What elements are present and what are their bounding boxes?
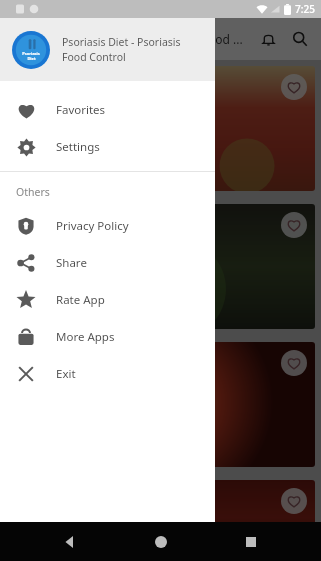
staticText: Settings [56,139,100,155]
button[interactable]: Favorite [281,488,307,514]
staticText: Others [16,185,50,199]
button[interactable]: Privacy Policy [0,207,215,244]
button[interactable]: Exit [0,355,215,392]
staticText: Privacy Policy [56,218,129,234]
button[interactable]: Notifications [255,26,281,52]
button[interactable]: Back [50,522,90,561]
button[interactable]: More Apps [0,318,215,355]
button[interactable]: soriasis [6,204,315,329]
staticText: Exit [56,366,76,382]
staticText: Favorites [56,102,106,118]
staticText: ood ... [208,31,243,47]
button[interactable]: riasis [6,342,315,467]
button[interactable]: Favorites [0,91,215,128]
button[interactable]: Favorite [281,350,307,376]
button[interactable]: Favorite [281,74,307,100]
button[interactable]: Settings [0,128,215,165]
staticText: Diet [27,56,36,61]
button[interactable]: Recent apps [231,522,271,561]
button[interactable]: Search [287,26,313,52]
button[interactable]: Home [141,522,181,561]
staticText: Psoriasis [22,51,40,56]
button[interactable]: Share [0,244,215,281]
staticText: Rate App [56,292,105,308]
button[interactable]: Favorite [6,480,315,555]
button[interactable]: Flare-ups [6,66,315,191]
staticText: soriasis [8,258,58,276]
button[interactable]: Rate App [0,281,215,318]
button[interactable]: Psoriasis [0,18,215,81]
staticText: More Apps [56,329,115,345]
staticText: Psoriasis Diet - Psoriasis Food Control [62,35,205,64]
staticText: 7:25 [295,2,315,16]
button[interactable]: Favorite [281,212,307,238]
staticText: Share [56,255,87,271]
